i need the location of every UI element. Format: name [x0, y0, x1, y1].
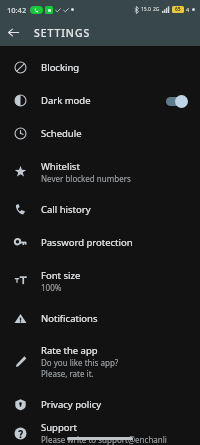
button[interactable]: Privacy policy — [0, 388, 200, 421]
button[interactable]: Whitelist — [0, 150, 200, 193]
staticText: Please, rate it. — [41, 368, 94, 379]
staticText: 2G — [153, 6, 160, 13]
staticText: Please write to support@enchanli — [41, 434, 167, 445]
staticText: SETTINGS — [34, 26, 91, 40]
button[interactable]: Back — [0, 19, 27, 46]
staticText: Support — [41, 421, 77, 434]
button[interactable]: Font size — [0, 259, 200, 302]
button[interactable]: Dark mode toggle — [166, 94, 188, 108]
staticText: Dark mode — [41, 94, 91, 107]
button[interactable]: Notifications — [0, 302, 200, 335]
button[interactable]: Dark mode — [0, 84, 200, 117]
staticText: 15.0 — [141, 6, 151, 13]
staticText: 65 — [175, 6, 181, 13]
button[interactable]: Blocking — [0, 51, 200, 84]
staticText: Blocking — [41, 61, 80, 74]
staticText: Never blocked numbers — [41, 173, 131, 184]
staticText: 100% — [41, 282, 62, 293]
staticText: Notifications — [41, 312, 98, 325]
staticText: Privacy policy — [41, 398, 102, 411]
staticText: 10:42 — [7, 5, 27, 15]
button[interactable]: Support — [0, 421, 200, 445]
staticText: Whitelist — [41, 160, 80, 173]
staticText: Password protection — [41, 236, 133, 249]
staticText: Schedule — [41, 127, 82, 140]
staticText: Rate the app — [41, 344, 98, 357]
staticText: Call history — [41, 203, 91, 216]
button[interactable]: Rate the app — [0, 335, 200, 388]
button[interactable]: Password protection — [0, 226, 200, 259]
button[interactable]: Schedule — [0, 117, 200, 150]
staticText: Font size — [41, 269, 81, 282]
staticText: 4 — [186, 6, 190, 13]
staticText: Do you like this app? — [41, 357, 119, 368]
button[interactable]: Call history — [0, 193, 200, 226]
